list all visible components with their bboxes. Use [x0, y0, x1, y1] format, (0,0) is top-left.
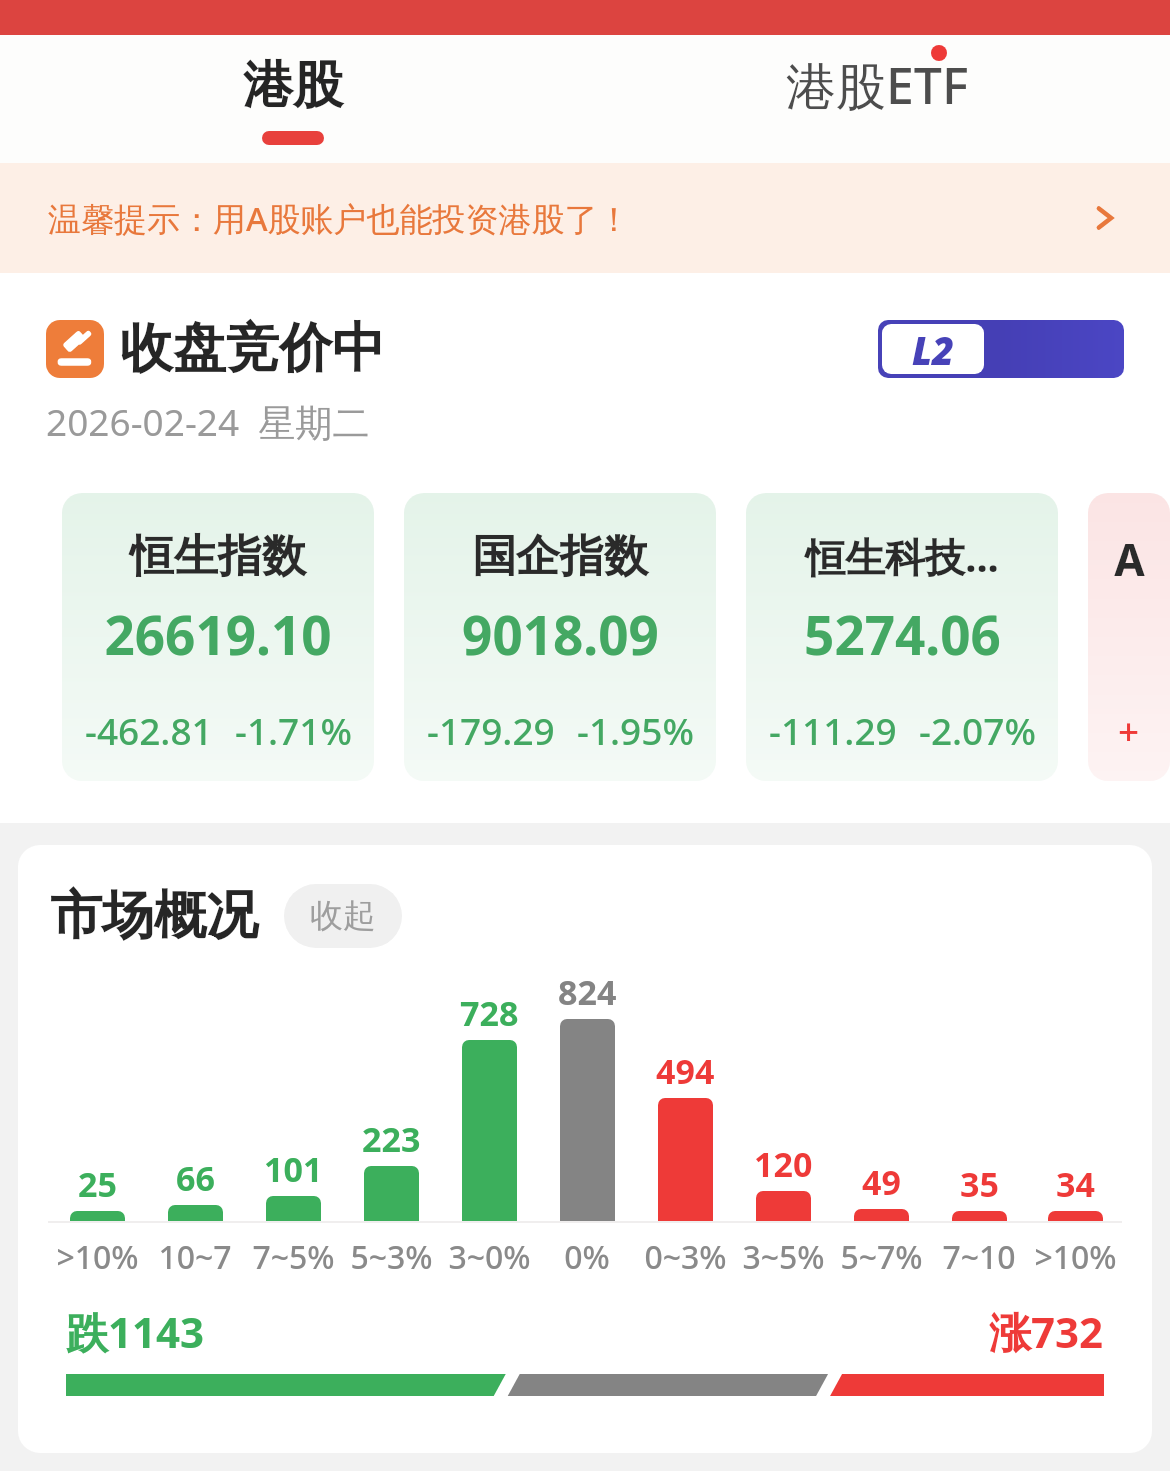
staticText: 跌1143: [66, 1303, 205, 1360]
staticText: -2.07%: [919, 705, 1036, 755]
staticText: 国企指数: [472, 529, 648, 584]
staticText: 5~7%: [840, 1235, 923, 1279]
button[interactable]: 恒生科技...: [746, 493, 1058, 781]
button[interactable]: A: [1088, 493, 1170, 781]
staticText: 824: [558, 969, 617, 1015]
button[interactable]: 国企指数: [404, 493, 716, 781]
other: 竞价: [46, 320, 104, 378]
staticText: 2026-02-24 星期二: [46, 396, 370, 447]
staticText: 0~3%: [644, 1235, 727, 1279]
staticText: 港股: [243, 54, 343, 117]
staticText: 101: [264, 1146, 323, 1192]
staticText: 3~5%: [742, 1235, 825, 1279]
staticText: 收起: [310, 895, 376, 937]
button[interactable]: 收起: [284, 884, 402, 948]
staticText: +: [1118, 705, 1140, 755]
staticText: 3~0%: [448, 1235, 531, 1279]
staticText: L2: [912, 324, 955, 374]
staticText: 0%: [564, 1235, 610, 1279]
staticText: 728: [460, 990, 519, 1036]
staticText: 34: [1056, 1161, 1095, 1207]
staticText: >10%: [56, 1235, 139, 1279]
staticText: 7~10%: [930, 1235, 1028, 1279]
staticText: -462.81: [85, 705, 213, 755]
staticText: 港股ETF: [786, 51, 969, 119]
staticText: 5~3%: [350, 1235, 433, 1279]
staticText: 温馨提示：用A股账户也能投资港股了！: [48, 196, 631, 241]
staticText: 26619.10: [104, 598, 332, 670]
staticText: >10%: [1034, 1235, 1117, 1279]
button[interactable]: L2 行情: [878, 320, 1124, 378]
staticText: 恒生指数: [130, 529, 306, 584]
staticText: 5274.06: [804, 598, 1001, 670]
staticText: -179.29: [427, 705, 555, 755]
staticText: 494: [656, 1048, 715, 1094]
staticText: 35: [960, 1161, 999, 1207]
staticText: 恒生科技...: [805, 529, 999, 584]
staticText: -1.71%: [235, 705, 352, 755]
button[interactable]: 港股ETF: [585, 35, 1170, 163]
staticText: 涨732: [989, 1303, 1104, 1360]
staticText: 10~7%: [146, 1235, 244, 1279]
staticText: 9018.09: [462, 598, 659, 670]
staticText: 223: [362, 1116, 421, 1162]
button[interactable]: 温馨提示：用A股账户也能投资港股了！: [0, 163, 1170, 273]
staticText: -111.29: [769, 705, 897, 755]
staticText: 市场概况: [50, 883, 258, 949]
staticText: A: [1114, 529, 1145, 589]
staticText: 66: [176, 1155, 215, 1201]
staticText: 49: [862, 1159, 901, 1205]
staticText: 120: [754, 1141, 813, 1187]
staticText: 7~5%: [252, 1235, 335, 1279]
button[interactable]: 港股: [0, 35, 585, 163]
button[interactable]: 恒生指数: [62, 493, 374, 781]
staticText: -1.95%: [577, 705, 694, 755]
staticText: 收盘竞价中: [120, 315, 385, 382]
staticText: 25: [78, 1161, 117, 1207]
